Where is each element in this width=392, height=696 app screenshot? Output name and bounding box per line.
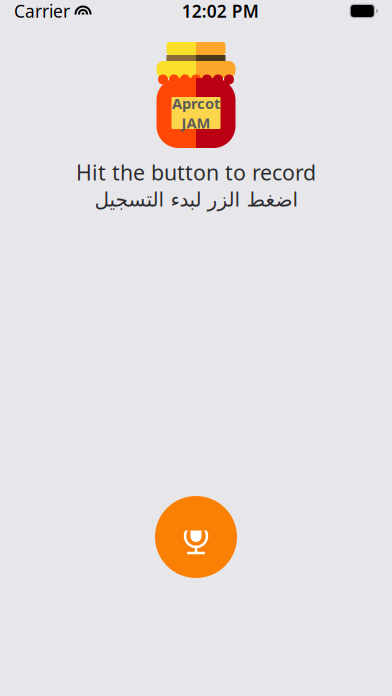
staticText: Aprcot (172, 93, 220, 113)
staticText: Carrier (14, 0, 70, 22)
staticText: 12:02 PM (182, 0, 259, 22)
staticText: Hit the button to record (76, 158, 316, 186)
staticText: JAM (181, 113, 210, 132)
staticText: اضغط الزر لبدء التسجيل (94, 188, 298, 211)
button[interactable]: Record (155, 496, 237, 578)
